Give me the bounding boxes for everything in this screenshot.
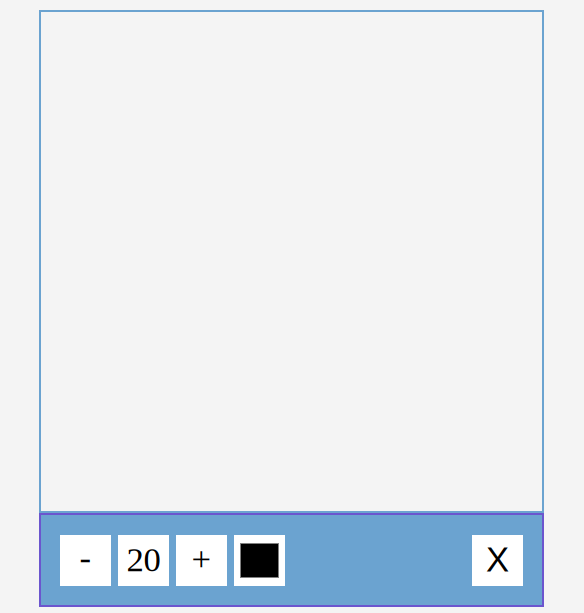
- button[interactable]: Clear canvas: [472, 535, 523, 586]
- staticText: -: [79, 538, 91, 577]
- button[interactable]: Decrease brush size: [60, 535, 111, 586]
- button[interactable]: Brush size 20: [118, 535, 169, 586]
- button[interactable]: Increase brush size: [176, 535, 227, 586]
- staticText: +: [191, 539, 211, 578]
- staticText: X: [486, 540, 509, 579]
- button[interactable]: Stroke colour: [234, 535, 285, 586]
- staticText: 20: [126, 540, 160, 579]
